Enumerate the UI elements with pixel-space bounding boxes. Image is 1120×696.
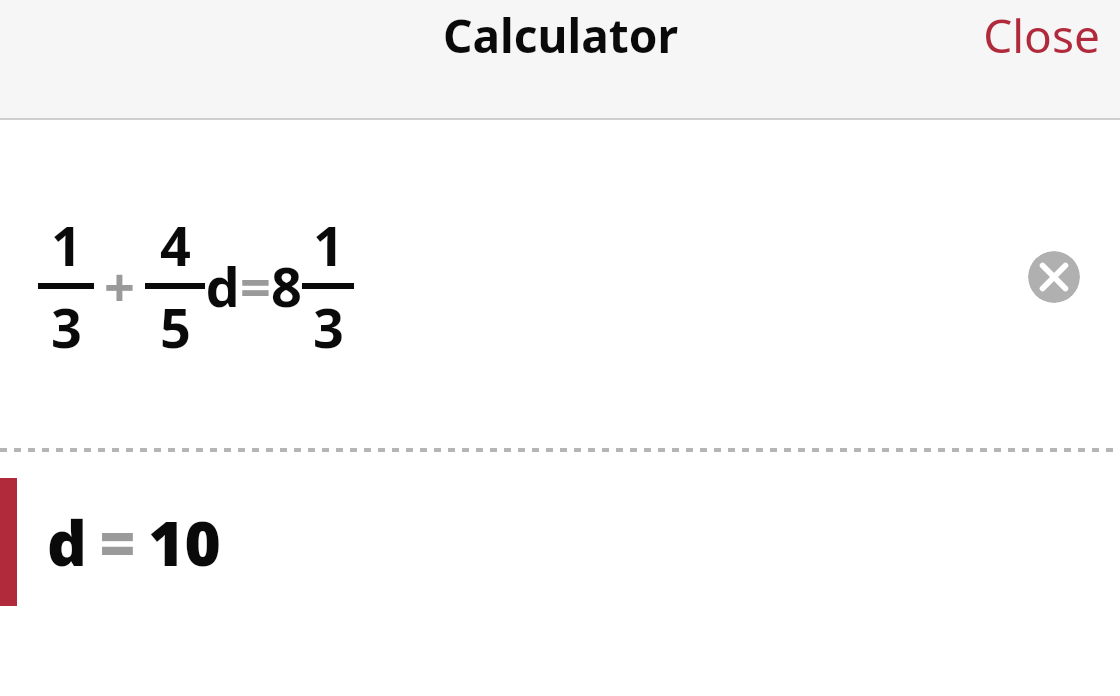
- button[interactable]: Clear equation: [1028, 251, 1080, 303]
- staticText: d: [47, 500, 87, 584]
- staticText: 1: [313, 208, 344, 282]
- staticText: Close: [983, 4, 1100, 67]
- staticText: d: [205, 249, 240, 323]
- staticText: 10: [148, 500, 221, 584]
- button[interactable]: Close: [959, 0, 1120, 75]
- staticText: 5: [160, 290, 191, 364]
- button[interactable]: d: [0, 452, 1120, 632]
- staticText: +: [104, 249, 135, 323]
- staticText: 3: [313, 290, 344, 364]
- staticText: 1: [51, 208, 82, 282]
- staticText: =: [240, 249, 271, 323]
- staticText: 4: [160, 208, 191, 282]
- staticText: =: [99, 500, 136, 584]
- staticText: Calculator: [443, 4, 678, 67]
- staticText: 8: [271, 249, 302, 323]
- staticText: 3: [51, 290, 82, 364]
